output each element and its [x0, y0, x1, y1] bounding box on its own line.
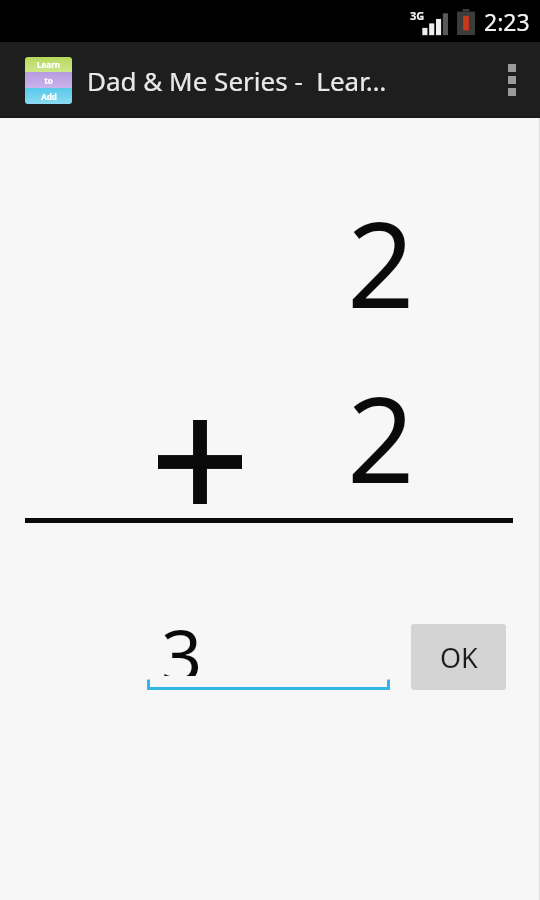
button[interactable]: OK	[411, 624, 506, 690]
staticText: 3G	[410, 8, 425, 23]
staticText: Add	[41, 91, 57, 102]
button[interactable]: Learn to Add app icon	[25, 57, 72, 104]
button[interactable]: More options	[484, 42, 540, 118]
staticText: 2	[347, 357, 415, 518]
staticText: to	[44, 75, 53, 86]
staticText: OK	[440, 639, 478, 676]
staticText: 2	[347, 182, 415, 343]
staticText: Learn	[37, 59, 60, 70]
staticText: 3	[161, 605, 203, 676]
staticText: Dad & Me Series - Lear…	[87, 63, 484, 98]
button[interactable]: 3	[147, 605, 390, 690]
staticText: 2:23	[484, 6, 530, 37]
